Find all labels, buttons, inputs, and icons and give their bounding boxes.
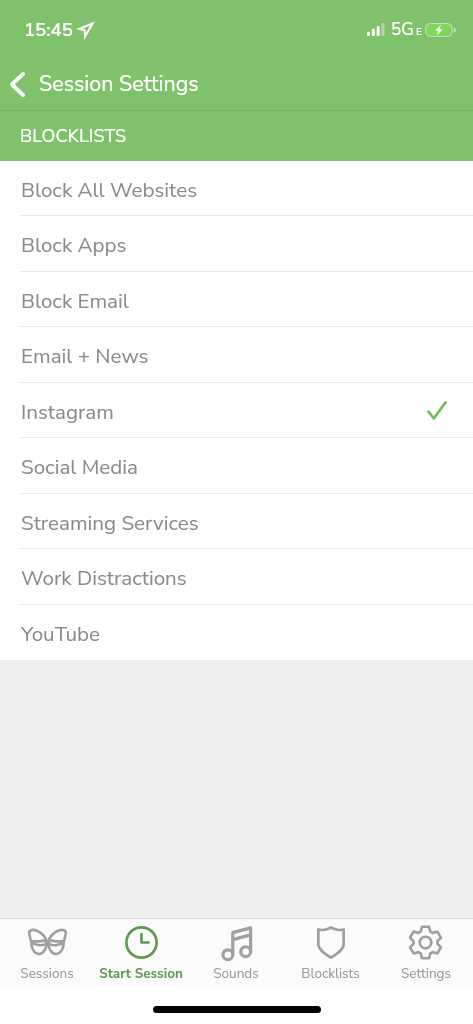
staticText: Social Media <box>21 453 138 481</box>
staticText: Block All Websites <box>21 176 198 204</box>
staticText: Work Distractions <box>21 564 187 592</box>
staticText: E <box>416 25 422 39</box>
staticText: Settings <box>401 964 451 982</box>
button[interactable]: Block Email <box>0 272 473 327</box>
button[interactable]: Instagram <box>0 383 473 438</box>
button[interactable]: Email + News <box>0 327 473 383</box>
button[interactable]: Work Distractions <box>0 549 473 605</box>
staticText: Session Settings <box>39 69 199 98</box>
staticText: Sessions <box>20 964 74 982</box>
button[interactable]: YouTube <box>0 605 473 660</box>
staticText: YouTube <box>21 620 101 648</box>
button[interactable]: Back <box>0 60 35 109</box>
button[interactable]: Settings <box>378 919 473 987</box>
staticText: BLOCKLISTS <box>20 124 127 149</box>
staticText: Streaming Services <box>21 509 199 537</box>
button[interactable]: Start Session <box>94 919 188 987</box>
staticText: 5G <box>391 18 414 41</box>
staticText: Instagram <box>21 398 114 426</box>
staticText: Block Apps <box>21 231 127 259</box>
staticText: Email + News <box>21 342 149 370</box>
button[interactable]: Block All Websites <box>0 161 473 216</box>
button[interactable]: Sounds <box>188 919 283 987</box>
button[interactable]: Blocklists <box>283 919 378 987</box>
staticText: Block Email <box>21 287 129 315</box>
staticText: Sounds <box>213 964 259 982</box>
button[interactable]: Social Media <box>0 438 473 494</box>
staticText: Start Session <box>99 964 183 982</box>
button[interactable]: Sessions <box>0 919 94 987</box>
button[interactable]: Block Apps <box>0 216 473 272</box>
staticText: Blocklists <box>301 964 360 982</box>
staticText: 15:45 <box>24 17 73 42</box>
button[interactable]: Streaming Services <box>0 494 473 549</box>
